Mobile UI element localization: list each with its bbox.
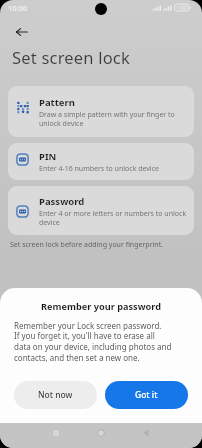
- staticText: Enter 4 or more letters or numbers to un…: [39, 209, 187, 227]
- staticText: Enter 4-16 numbers to unlock device: [39, 164, 159, 174]
- button[interactable]: Not now: [14, 381, 97, 409]
- button[interactable]: Password: [8, 186, 194, 235]
- staticText: Not now: [38, 389, 73, 401]
- button[interactable]: Got it: [105, 381, 188, 409]
- staticText: 10:00: [8, 3, 28, 13]
- staticText: Password: [39, 195, 85, 208]
- button[interactable]: Pattern: [8, 86, 194, 137]
- staticText: Pattern: [39, 96, 75, 109]
- button[interactable]: [142, 429, 150, 437]
- staticText: Set screen lock: [12, 46, 130, 68]
- staticText: Set screen lock before adding your finge…: [10, 240, 164, 250]
- button[interactable]: PIN: [8, 143, 194, 180]
- staticText: Got it: [135, 389, 158, 401]
- button[interactable]: [16, 27, 28, 37]
- button[interactable]: [52, 429, 60, 437]
- staticText: Remember your password: [0, 300, 202, 313]
- staticText: Draw a simple pattern with your finger t…: [39, 110, 175, 128]
- button[interactable]: [97, 429, 105, 437]
- staticText: PIN: [39, 150, 57, 163]
- staticText: Remember your Lock screen password. If y…: [14, 320, 172, 364]
